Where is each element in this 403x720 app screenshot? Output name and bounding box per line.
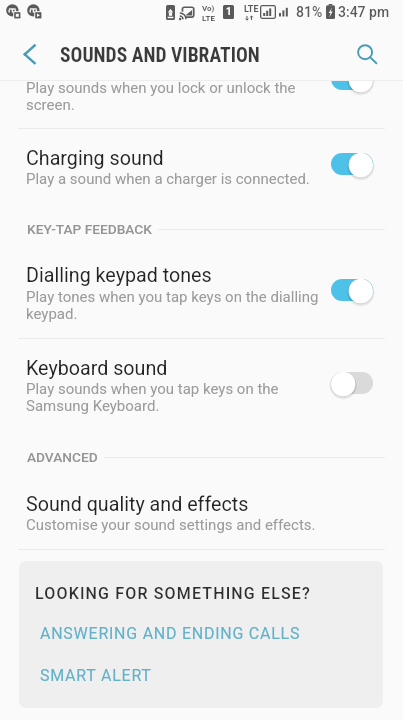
button[interactable] — [0, 129, 403, 206]
staticText: KEY-TAP FEEDBACK — [27, 221, 152, 237]
staticText: LTE — [244, 4, 259, 15]
button[interactable]: Switch on — [329, 80, 375, 93]
staticText: 1 — [226, 6, 232, 18]
staticText: Play sounds when you tap keys on the Sam… — [26, 380, 279, 414]
staticText: Play a sound when a charger is connected… — [26, 170, 310, 188]
button[interactable]: SMART ALERT — [19, 661, 383, 689]
button[interactable] — [0, 80, 403, 127]
staticText: 3:47 pm — [338, 4, 390, 20]
button[interactable]: Switch off — [329, 369, 375, 397]
staticText: LOOKING FOR SOMETHING ELSE? — [35, 584, 311, 603]
staticText: ANSWERING AND ENDING CALLS — [40, 624, 301, 643]
staticText: SMART ALERT — [40, 666, 152, 685]
staticText: LTE — [202, 14, 215, 23]
button[interactable] — [0, 247, 403, 337]
staticText: Play tones when you tap keys on the dial… — [26, 288, 319, 322]
staticText: Vo) — [202, 4, 215, 13]
button[interactable] — [0, 475, 403, 548]
button[interactable]: Switch on — [329, 276, 375, 304]
staticText: Charging sound — [26, 147, 164, 170]
button[interactable] — [0, 339, 403, 430]
staticText: Customise your sound settings and effect… — [26, 516, 316, 534]
button[interactable]: ANSWERING AND ENDING CALLS — [19, 619, 383, 647]
staticText: Play sounds when you lock or unlock the … — [26, 80, 296, 113]
staticText: SOUNDS AND VIBRATION — [60, 44, 260, 67]
staticText: 81% — [296, 4, 323, 20]
staticText: ADVANCED — [27, 449, 98, 465]
button[interactable]: Navigate up — [4, 26, 52, 74]
button[interactable]: Switch on — [329, 150, 375, 178]
staticText: Dialling keypad tones — [26, 264, 212, 287]
staticText: Keyboard sound — [26, 357, 168, 380]
staticText: Sound quality and effects — [26, 493, 249, 516]
button[interactable]: Search — [341, 26, 389, 74]
